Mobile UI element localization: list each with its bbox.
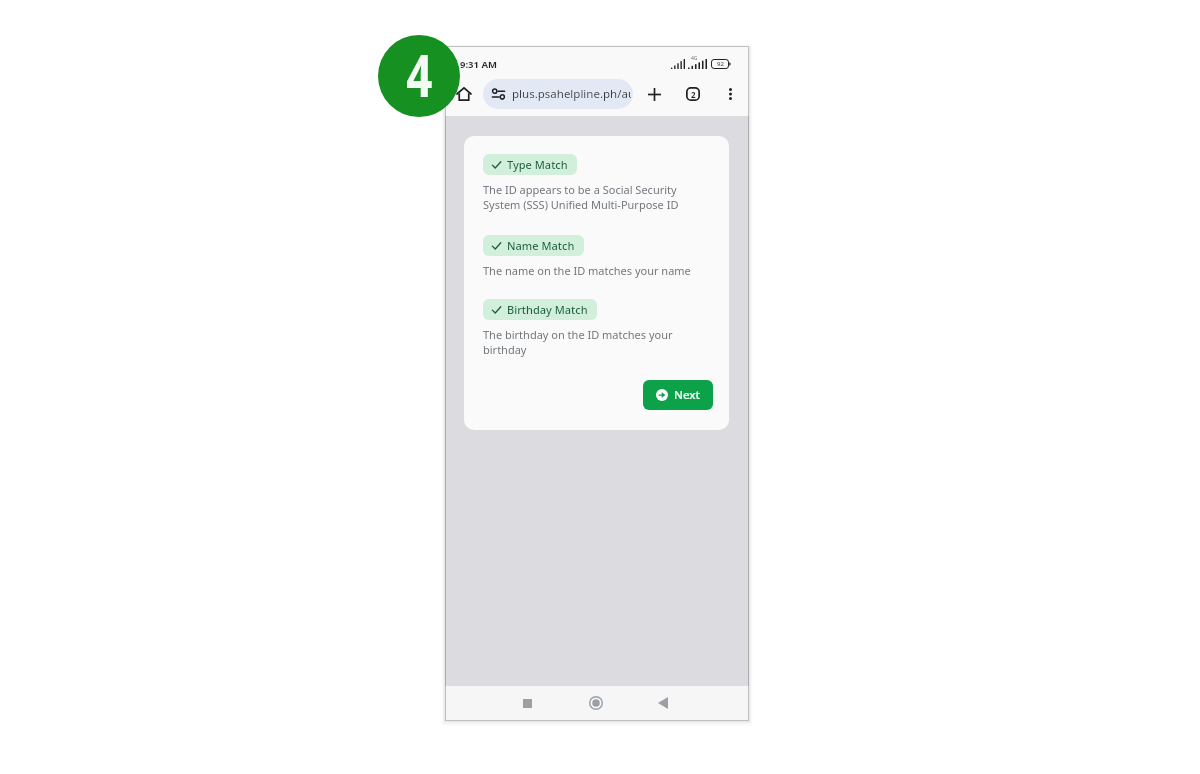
staticText: 92 [717, 60, 724, 68]
staticText: Next [674, 387, 700, 403]
button[interactable]: Back [649, 689, 677, 717]
staticText: The birthday on the ID matches your birt… [483, 327, 692, 357]
staticText: Birthday Match [507, 302, 588, 317]
button[interactable]: Home [582, 689, 610, 717]
button[interactable]: More options [718, 82, 742, 106]
staticText: Name Match [507, 238, 575, 253]
staticText: Type Match [507, 157, 568, 172]
button[interactable]: Home [452, 82, 476, 106]
button[interactable]: plus.psahelpline.ph/au [483, 79, 633, 109]
button[interactable]: Tabs [681, 82, 705, 106]
button[interactable]: Next [643, 380, 713, 410]
staticText: 4G [691, 55, 698, 62]
staticText: The ID appears to be a Social Security S… [483, 182, 692, 212]
button[interactable]: Type Match [483, 154, 577, 175]
staticText: 9:31 AM [460, 58, 497, 71]
button[interactable]: Recent apps [513, 689, 541, 717]
staticText: 2 [691, 89, 696, 100]
button[interactable]: Birthday Match [483, 299, 597, 320]
button[interactable]: New tab [642, 82, 666, 106]
staticText: plus.psahelpline.ph/au [512, 86, 631, 102]
staticText: 4 [406, 35, 433, 115]
staticText: The name on the ID matches your name [483, 263, 691, 278]
button[interactable]: Name Match [483, 235, 584, 256]
